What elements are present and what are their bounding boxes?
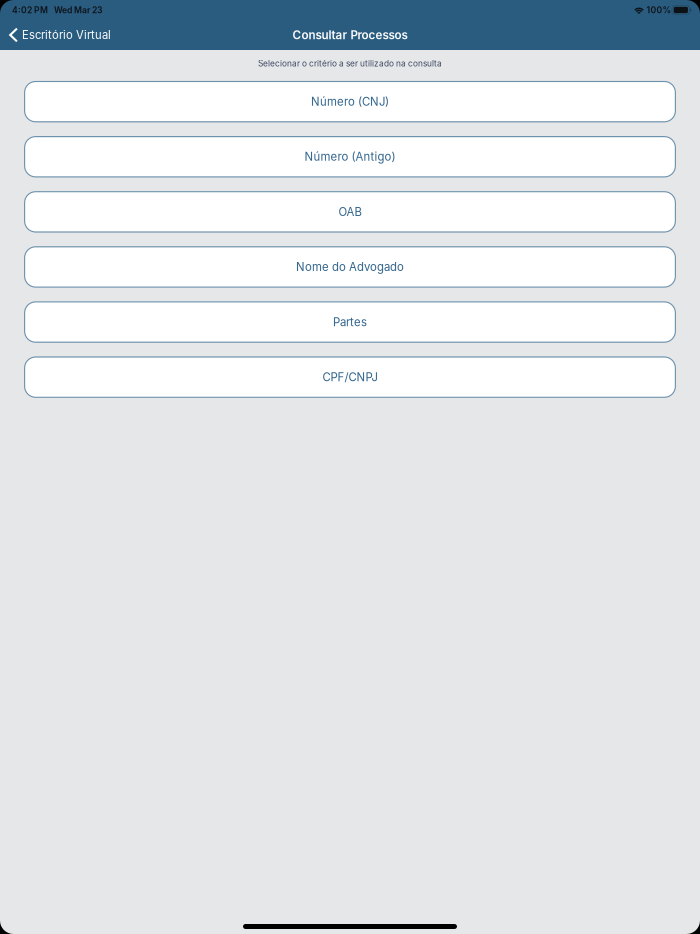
- staticText: Escritório Virtual: [22, 28, 111, 42]
- button[interactable]: Partes: [25, 302, 675, 342]
- staticText: Partes: [333, 315, 367, 329]
- staticText: Número (CNJ): [311, 95, 389, 108]
- button[interactable]: OAB: [25, 192, 675, 232]
- button[interactable]: Nome do Advogado: [25, 247, 675, 287]
- button[interactable]: Número (CNJ): [25, 81, 675, 122]
- button[interactable]: CPF/CNPJ: [25, 357, 675, 397]
- staticText: Nome do Advogado: [296, 260, 404, 274]
- staticText: Selecionar o critério a ser utilizado na…: [258, 58, 442, 68]
- staticText: Número (Antigo): [304, 150, 395, 164]
- staticText: 100%: [646, 5, 671, 15]
- staticText: OAB: [338, 205, 361, 219]
- staticText: 4:02 PM: [12, 5, 48, 15]
- staticText: Wed Mar 23: [54, 5, 102, 15]
- staticText: Consultar Processos: [292, 28, 407, 42]
- staticText: CPF/CNPJ: [322, 370, 377, 384]
- button[interactable]: Número (Antigo): [25, 137, 675, 177]
- button[interactable]: Back to Escritório Virtual: [0, 20, 120, 50]
